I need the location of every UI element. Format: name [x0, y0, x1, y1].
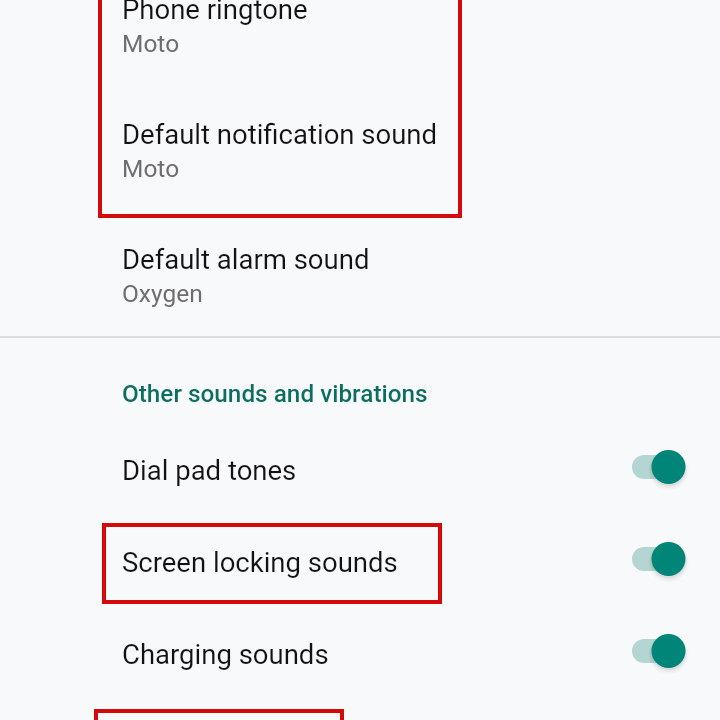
- staticText: Moto: [122, 29, 180, 58]
- button[interactable]: Default alarm sound: [0, 225, 720, 329]
- button[interactable]: Phone ringtone: [0, 0, 720, 79]
- button[interactable]: Dial pad tones: [0, 421, 720, 513]
- staticText: Oxygen: [122, 279, 203, 308]
- button[interactable]: Screen locking sounds: [0, 513, 720, 605]
- staticText: Moto: [122, 154, 180, 183]
- staticText: Phone ringtone: [122, 0, 308, 25]
- staticText: Other sounds and vibrations: [122, 379, 428, 407]
- staticText: Dial pad tones: [122, 454, 297, 486]
- button[interactable]: Charging sounds: [0, 605, 720, 697]
- button[interactable]: Default notification sound: [0, 100, 720, 204]
- button[interactable]: Charging sounds, on: [628, 627, 690, 675]
- staticText: Screen locking sounds: [122, 546, 398, 578]
- button[interactable]: Screen locking sounds, on: [628, 535, 690, 583]
- staticText: Default alarm sound: [122, 243, 370, 275]
- staticText: Charging sounds: [122, 638, 329, 670]
- button[interactable]: Dial pad tones, on: [628, 443, 690, 491]
- staticText: Default notification sound: [122, 118, 438, 150]
